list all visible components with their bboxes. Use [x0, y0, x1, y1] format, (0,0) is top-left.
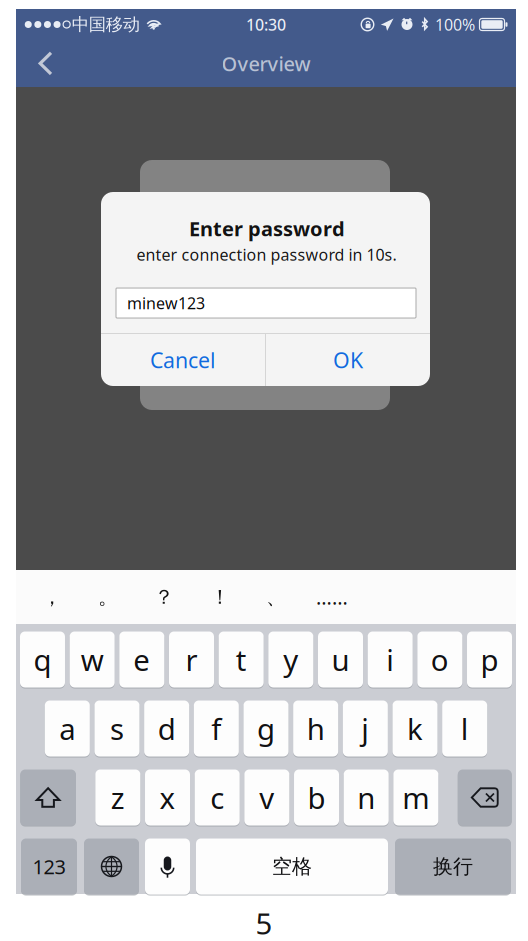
- button[interactable]: Cancel: [101, 334, 265, 386]
- staticText: ？: [154, 585, 174, 609]
- button[interactable]: 、: [248, 570, 304, 624]
- button[interactable]: Next keyboard: [84, 838, 139, 894]
- staticText: 、: [266, 585, 286, 609]
- button[interactable]: Delete: [458, 769, 512, 825]
- staticText: c: [210, 778, 224, 817]
- staticText: ，: [42, 585, 62, 609]
- button[interactable]: q: [20, 631, 65, 687]
- button[interactable]: g: [243, 700, 288, 756]
- staticText: y: [283, 640, 298, 679]
- button[interactable]: ？: [136, 570, 192, 624]
- staticText: ！: [210, 585, 230, 609]
- staticText: l: [461, 709, 469, 748]
- button[interactable]: m: [393, 769, 438, 825]
- button[interactable]: f: [194, 700, 239, 756]
- staticText: 100%: [435, 14, 475, 35]
- button[interactable]: r: [169, 631, 214, 687]
- button[interactable]: h: [293, 700, 338, 756]
- staticText: 5: [255, 903, 272, 941]
- staticText: t: [236, 640, 247, 679]
- button[interactable]: ……: [304, 570, 360, 624]
- staticText: v: [259, 778, 274, 817]
- staticText: p: [480, 640, 498, 679]
- staticText: o: [431, 640, 449, 679]
- staticText: enter connection password in 10s.: [136, 244, 396, 265]
- button[interactable]: 123: [21, 838, 77, 894]
- staticText: Cancel: [150, 346, 216, 374]
- staticText: 123: [32, 853, 65, 880]
- button[interactable]: p: [467, 631, 512, 687]
- staticText: j: [361, 709, 369, 748]
- staticText: 。: [98, 585, 118, 609]
- button[interactable]: z: [95, 769, 140, 825]
- button[interactable]: 。: [80, 570, 136, 624]
- staticText: s: [110, 709, 124, 748]
- button[interactable]: ，: [24, 570, 80, 624]
- staticText: u: [331, 640, 349, 679]
- staticText: x: [159, 778, 175, 817]
- staticText: Enter password: [189, 215, 345, 242]
- staticText: n: [357, 778, 375, 817]
- button[interactable]: v: [244, 769, 289, 825]
- staticText: Overview: [221, 50, 310, 77]
- staticText: 空格: [272, 854, 312, 879]
- staticText: h: [307, 709, 325, 748]
- staticText: d: [158, 709, 176, 748]
- staticText: z: [111, 778, 125, 817]
- button[interactable]: a: [45, 700, 90, 756]
- staticText: a: [59, 709, 75, 748]
- button[interactable]: y: [268, 631, 313, 687]
- button[interactable]: OK: [266, 334, 430, 386]
- button[interactable]: j: [343, 700, 388, 756]
- staticText: 中国移动: [72, 14, 140, 35]
- staticText: w: [81, 640, 104, 679]
- button[interactable]: Dictation: [145, 838, 190, 894]
- staticText: e: [133, 640, 150, 679]
- button[interactable]: c: [195, 769, 240, 825]
- button[interactable]: o: [417, 631, 462, 687]
- button[interactable]: n: [344, 769, 389, 825]
- button[interactable]: d: [144, 700, 189, 756]
- button[interactable]: Shift: [20, 769, 76, 825]
- staticText: 10:30: [246, 14, 286, 35]
- staticText: q: [33, 640, 51, 679]
- button[interactable]: 空格: [196, 838, 388, 894]
- staticText: r: [185, 640, 197, 679]
- staticText: b: [307, 778, 325, 817]
- staticText: OK: [333, 346, 363, 374]
- button[interactable]: u: [318, 631, 363, 687]
- button[interactable]: w: [70, 631, 115, 687]
- staticText: g: [257, 709, 275, 748]
- button[interactable]: ！: [192, 570, 248, 624]
- staticText: i: [386, 640, 394, 679]
- staticText: minew123: [127, 292, 205, 314]
- button[interactable]: e: [119, 631, 164, 687]
- button[interactable]: l: [442, 700, 487, 756]
- staticText: 换行: [433, 854, 473, 879]
- button[interactable]: x: [145, 769, 190, 825]
- staticText: ……: [316, 584, 348, 610]
- button[interactable]: k: [392, 700, 437, 756]
- button[interactable]: Back: [24, 40, 68, 87]
- button[interactable]: i: [368, 631, 413, 687]
- staticText: f: [211, 709, 221, 748]
- button[interactable]: b: [294, 769, 339, 825]
- button[interactable]: 换行: [395, 838, 511, 894]
- button[interactable]: s: [94, 700, 139, 756]
- staticText: m: [402, 778, 429, 817]
- button[interactable]: t: [219, 631, 264, 687]
- staticText: k: [407, 709, 423, 748]
